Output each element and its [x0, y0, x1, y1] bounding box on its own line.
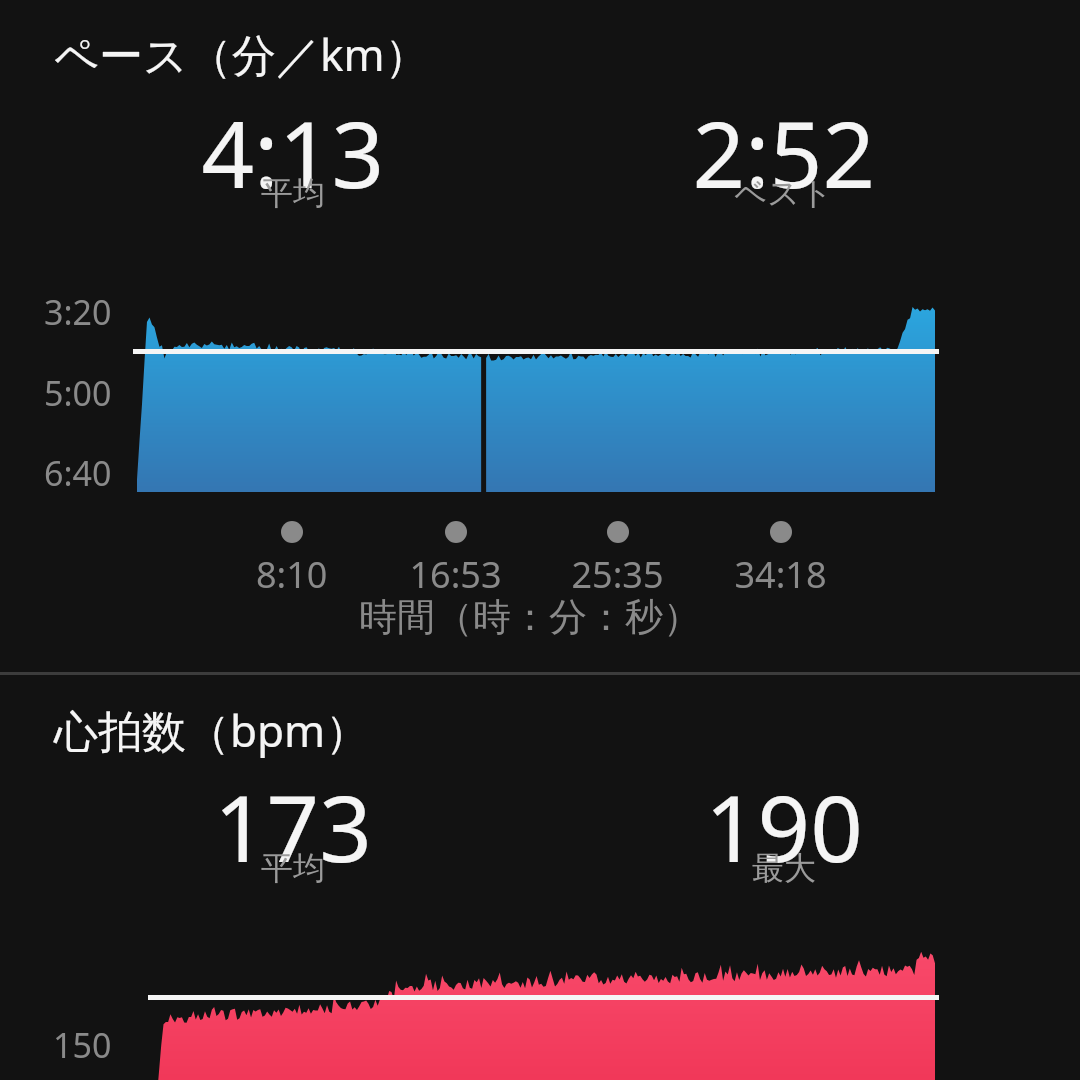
button[interactable]: Pace and heart rate workout charts [0, 0, 1080, 1080]
